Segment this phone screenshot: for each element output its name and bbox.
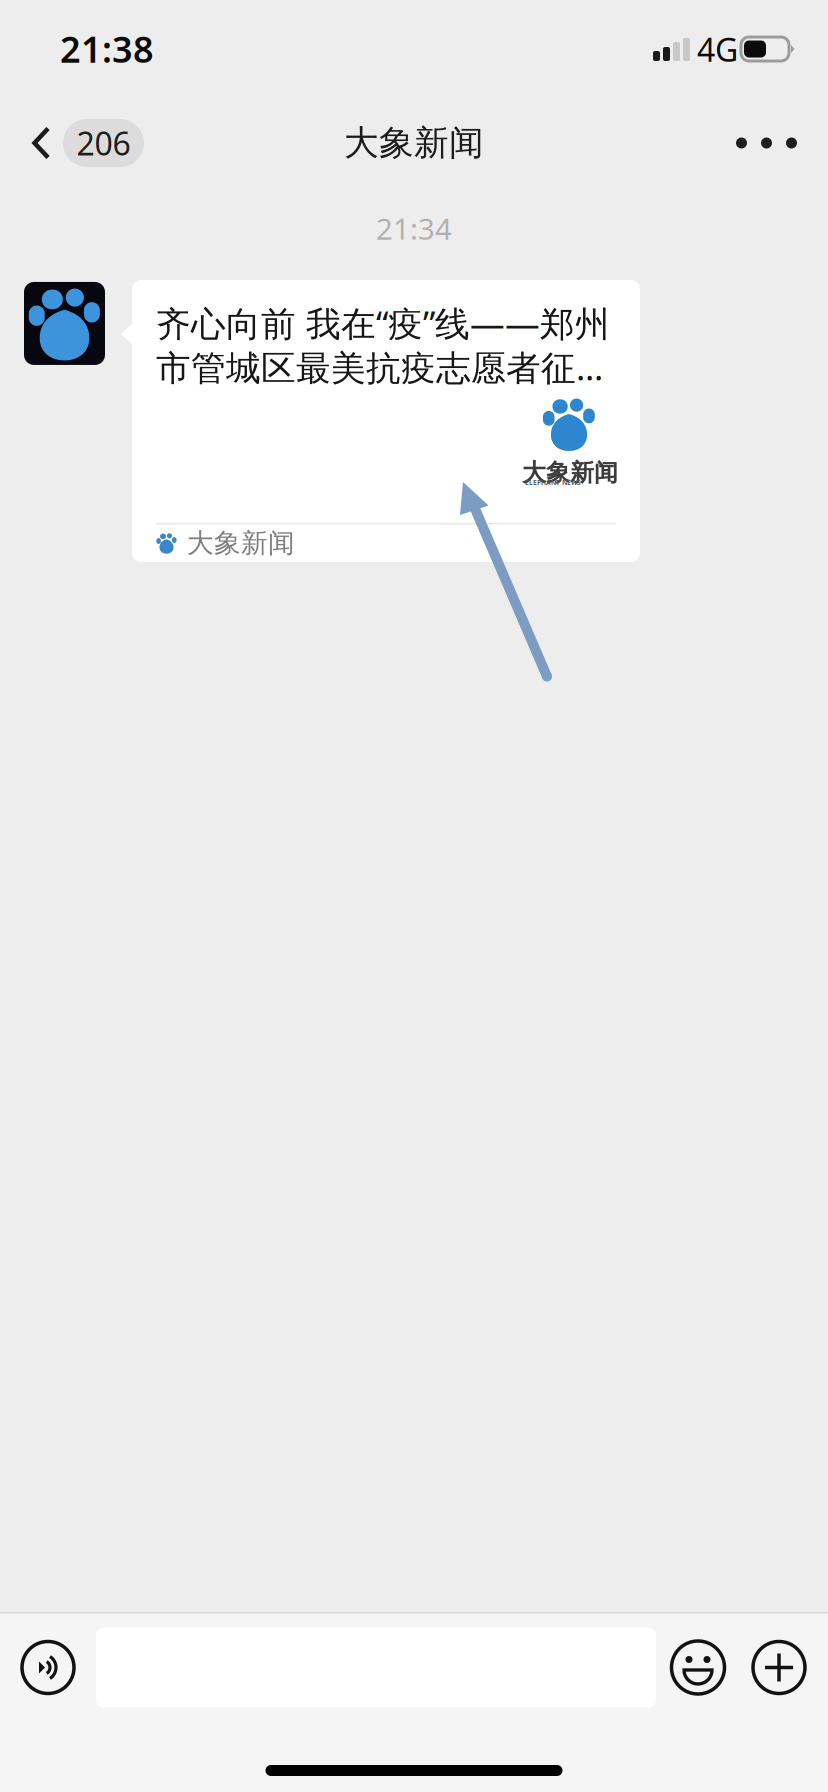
button[interactable]: Voice message <box>11 1613 85 1721</box>
button[interactable]: Message input field <box>85 1613 656 1721</box>
button[interactable]: Emoji <box>671 1613 725 1721</box>
staticText: 206 <box>76 122 130 164</box>
staticText: 21:38 <box>60 25 154 73</box>
staticText: ELEPHANT NEWS <box>525 478 581 487</box>
staticText: 21:34 <box>376 209 452 248</box>
button[interactable]: More actions <box>725 1613 806 1721</box>
staticText: 齐心向前 我在“疫”线——郑州 市管城区最美抗疫志愿者征... <box>156 300 610 390</box>
staticText: 大象新闻 <box>187 527 295 560</box>
staticText: 4G <box>697 28 738 70</box>
button[interactable]: 齐心向前 我在“疫”线——郑州 市管城区最美抗疫志愿者征... <box>132 280 640 562</box>
button[interactable]: More options <box>705 113 828 172</box>
staticText: 大象新闻 <box>344 122 484 164</box>
button[interactable]: 206 <box>0 111 144 175</box>
staticText: 大象新闻 <box>522 458 618 487</box>
